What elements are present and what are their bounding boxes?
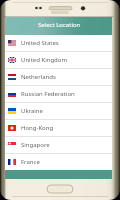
button[interactable]: Select Location (5, 17, 112, 35)
button[interactable]: Russian Federation (5, 86, 112, 102)
staticText: Select Location (38, 21, 81, 29)
staticText: Ukraine (21, 107, 43, 115)
staticText: France (21, 158, 40, 166)
button[interactable]: Singapore (5, 137, 112, 153)
button[interactable]: United States (5, 35, 112, 51)
staticText: United Kingdom (21, 56, 68, 64)
staticText: Russian Federation (21, 90, 75, 98)
staticText: Hong-Kong (21, 124, 54, 132)
button[interactable]: Netherlands (5, 69, 112, 85)
button[interactable]: United Kingdom (5, 52, 112, 68)
button[interactable]: Ukraine (5, 103, 112, 119)
staticText: United States (21, 39, 59, 47)
staticText: Netherlands (21, 73, 56, 81)
staticText: Singapore (21, 141, 50, 149)
button[interactable]: France (5, 154, 112, 170)
button[interactable]: Hong-Kong (5, 120, 112, 136)
staticText: SAMSUNG (51, 10, 69, 15)
